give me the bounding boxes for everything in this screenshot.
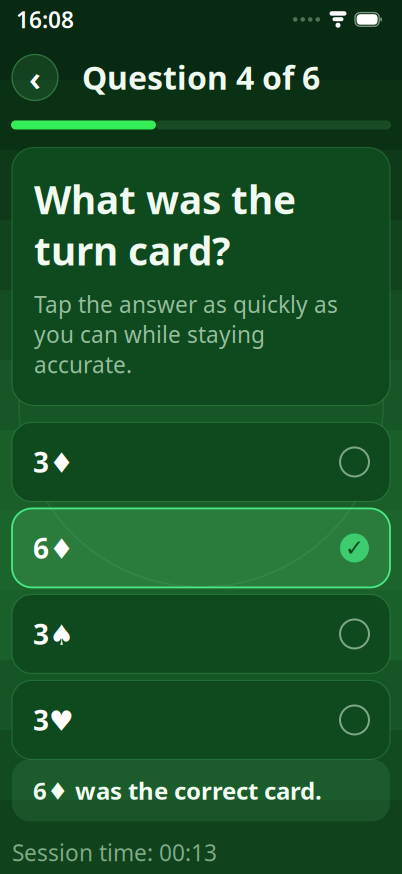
button[interactable]: 6♦ <box>12 508 390 587</box>
staticText: 3♦ <box>33 443 74 481</box>
button[interactable]: 3♦ <box>12 422 390 501</box>
staticText: 6♦ was the correct card. <box>33 774 322 806</box>
staticText: Session time: 00:13 <box>12 837 217 867</box>
staticText: 3♠ <box>33 615 74 653</box>
staticText: Question 4 of 6 <box>82 56 320 99</box>
button[interactable]: 3♥ <box>12 680 390 759</box>
staticText: What was the turn card? <box>34 173 296 276</box>
staticText: 3♥ <box>33 701 74 739</box>
staticText: ‹ <box>29 54 41 100</box>
staticText: 16:08 <box>16 4 74 34</box>
staticText: 6♦ <box>33 529 74 567</box>
button[interactable]: Back <box>12 54 58 100</box>
button[interactable]: 3♠ <box>12 594 390 673</box>
staticText: ✓ <box>345 535 364 561</box>
staticText: Tap the answer as quickly as you can whi… <box>34 289 338 379</box>
